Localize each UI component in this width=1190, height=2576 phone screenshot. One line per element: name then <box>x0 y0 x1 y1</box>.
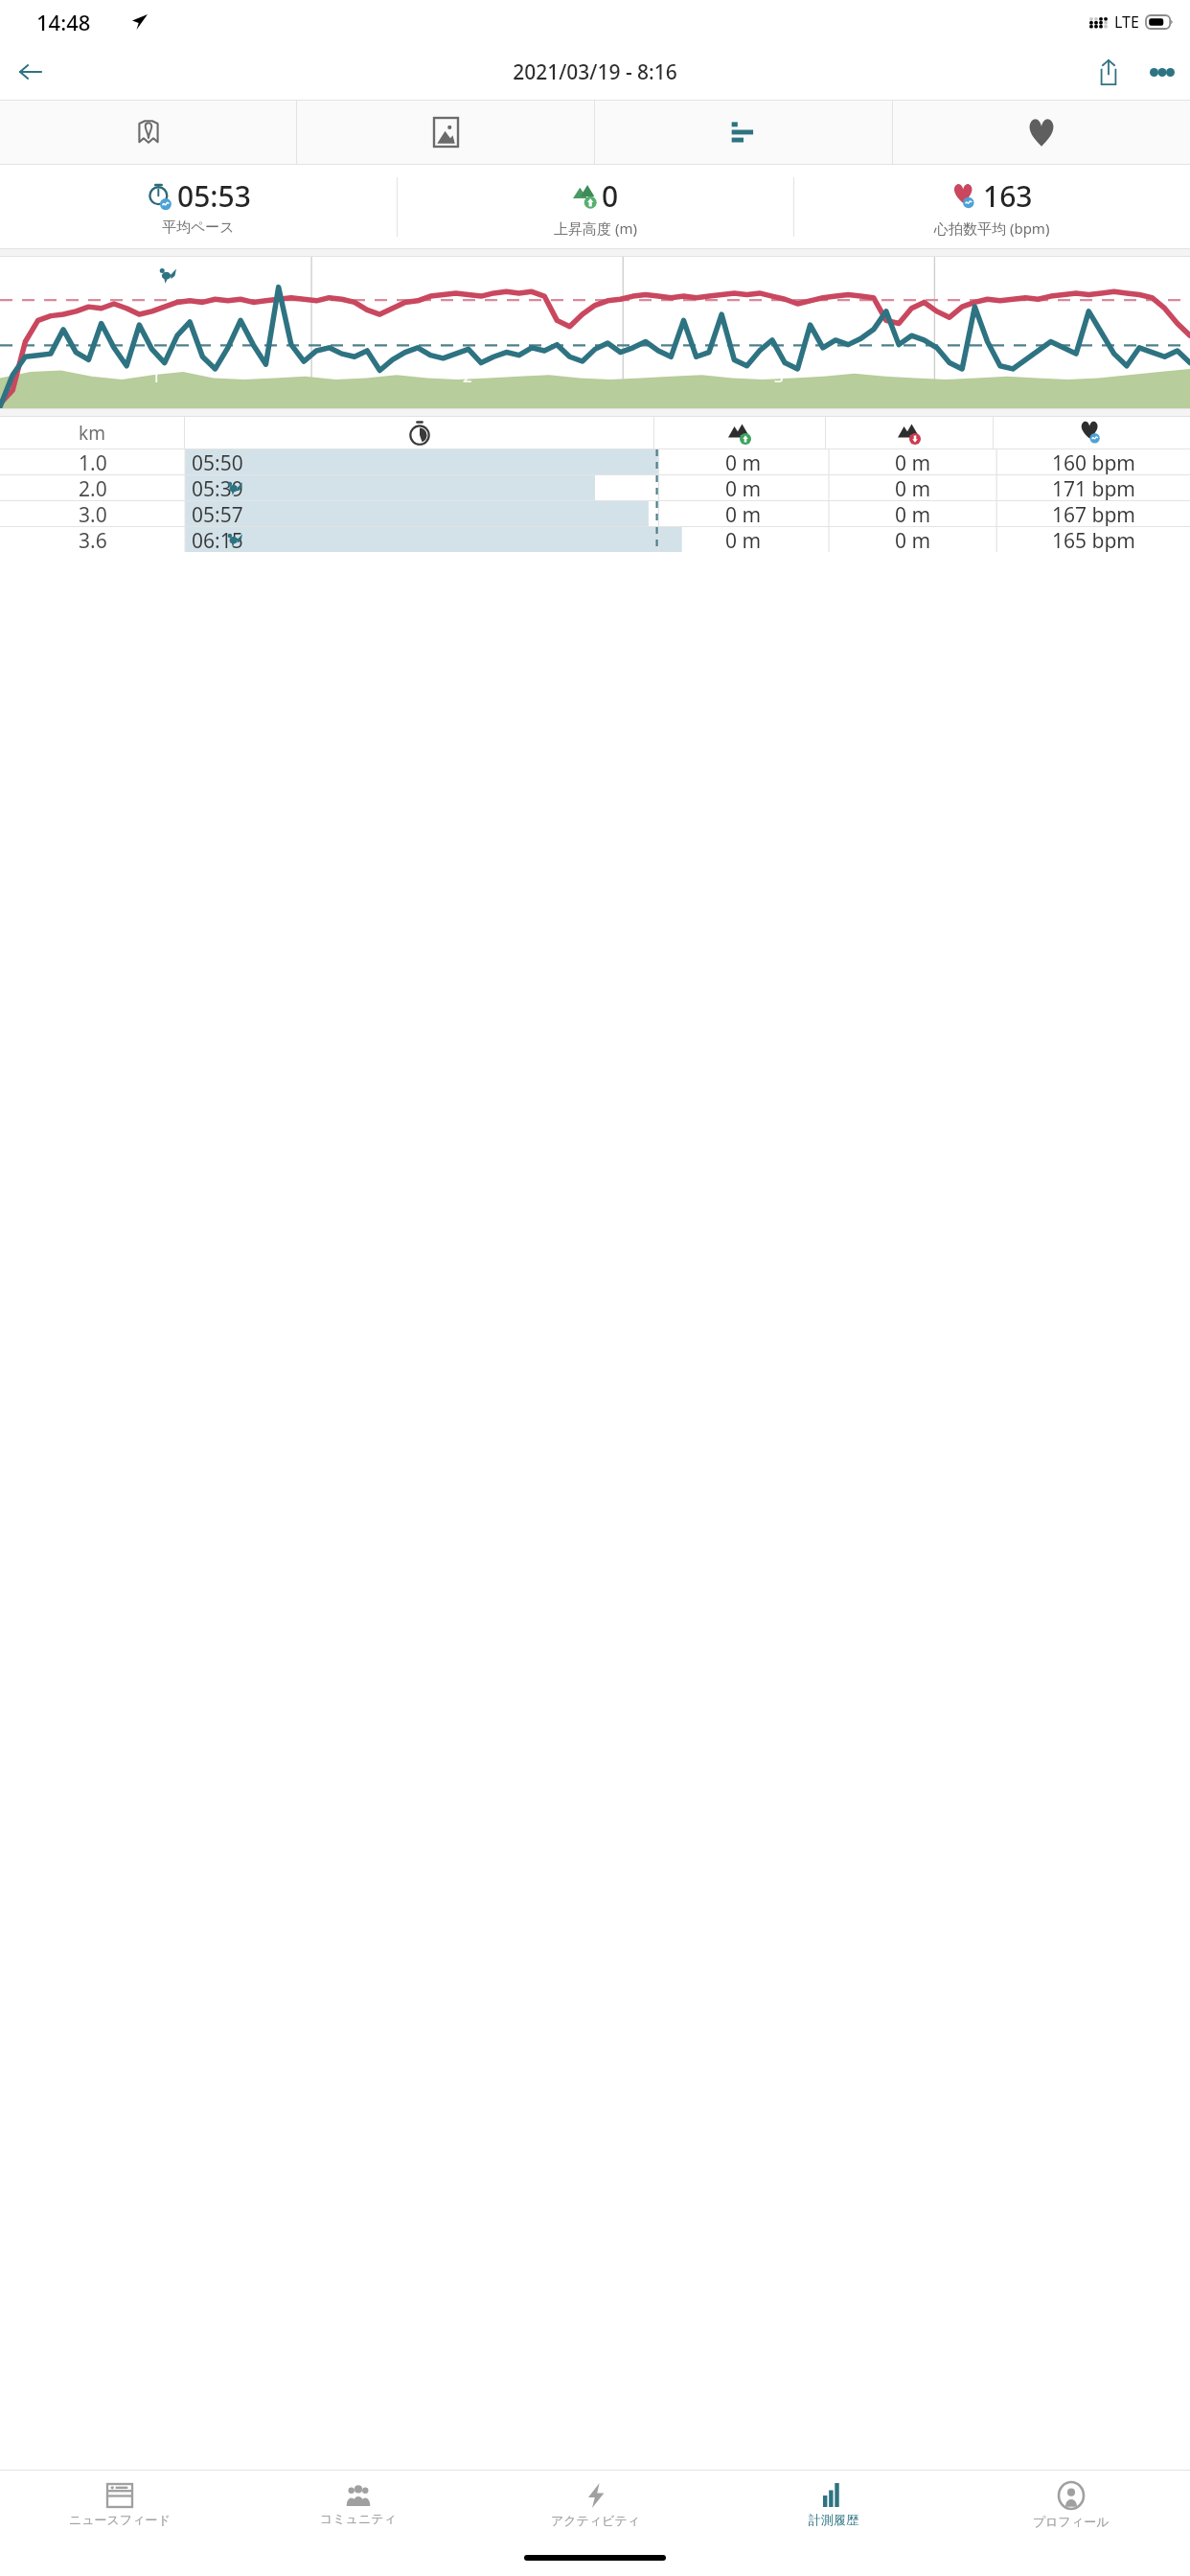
staticText: 0 m <box>725 475 762 500</box>
staticText: 163 <box>983 176 1033 216</box>
button[interactable]: Photos <box>297 101 594 164</box>
button[interactable]: Share <box>1083 46 1134 98</box>
staticText: 165 bpm <box>1052 527 1135 552</box>
staticText: 05:53 <box>177 176 251 216</box>
staticText: 3 <box>774 365 784 387</box>
staticText: 1.0 <box>79 449 107 474</box>
staticText: 2.0 <box>79 475 107 500</box>
staticText: プロフィール <box>1033 2514 1110 2529</box>
staticText: 0 m <box>725 501 762 526</box>
button[interactable]: Heart rate <box>893 101 1190 164</box>
button[interactable]: More options <box>1134 44 1190 100</box>
staticText: 上昇高度 (m) <box>554 218 637 238</box>
button[interactable]: コミュニティ <box>239 2471 477 2540</box>
staticText: 0 m <box>895 527 931 552</box>
button[interactable]: Map <box>0 101 296 164</box>
staticText: 3.6 <box>79 527 107 552</box>
button[interactable]: 計測履歴 <box>715 2471 952 2540</box>
button[interactable]: 1.0 <box>0 449 1190 474</box>
staticText: 0 m <box>895 475 931 500</box>
button[interactable]: Back <box>8 49 54 95</box>
staticText: 05:39 <box>192 475 243 500</box>
staticText: 2 <box>463 365 472 387</box>
staticText: 171 bpm <box>1052 475 1135 500</box>
staticText: ニュースフィード <box>69 2512 171 2527</box>
button[interactable]: Charts <box>595 101 892 164</box>
staticText: 2021/03/19 - 8:16 <box>513 58 677 86</box>
staticText: 167 bpm <box>1052 501 1135 526</box>
button[interactable]: 3.0 <box>0 501 1190 526</box>
staticText: 05:57 <box>192 501 243 526</box>
button[interactable]: 2.0 <box>0 475 1190 500</box>
button[interactable]: 0 <box>398 165 793 248</box>
button[interactable]: 05:53 <box>0 165 397 248</box>
staticText: 0 m <box>725 449 762 474</box>
staticText: コミュニティ <box>320 2511 397 2526</box>
staticText: LTE <box>1114 11 1139 33</box>
button[interactable]: 163 <box>794 165 1190 248</box>
button[interactable]: ニュースフィード <box>0 2471 239 2540</box>
staticText: 0 <box>602 176 619 216</box>
staticText: 05:50 <box>192 449 243 474</box>
staticText: 160 bpm <box>1052 449 1135 474</box>
staticText: 1 <box>151 365 161 387</box>
button[interactable]: アクティビティ <box>477 2471 715 2540</box>
staticText: 14:48 <box>36 8 91 36</box>
staticText: 平均ペース <box>162 218 235 237</box>
staticText: km <box>79 421 105 446</box>
staticText: 計測履歴 <box>809 2512 858 2527</box>
staticText: 3.0 <box>79 501 107 526</box>
staticText: 0 m <box>725 527 762 552</box>
staticText: 06:15 <box>192 527 243 552</box>
button[interactable]: 3.6 <box>0 527 1190 552</box>
staticText: 0 m <box>895 449 931 474</box>
staticText: アクティビティ <box>551 2513 641 2528</box>
staticText: 心拍数平均 (bpm) <box>934 218 1050 238</box>
button[interactable]: プロフィール <box>952 2471 1190 2540</box>
staticText: 0 m <box>895 501 931 526</box>
